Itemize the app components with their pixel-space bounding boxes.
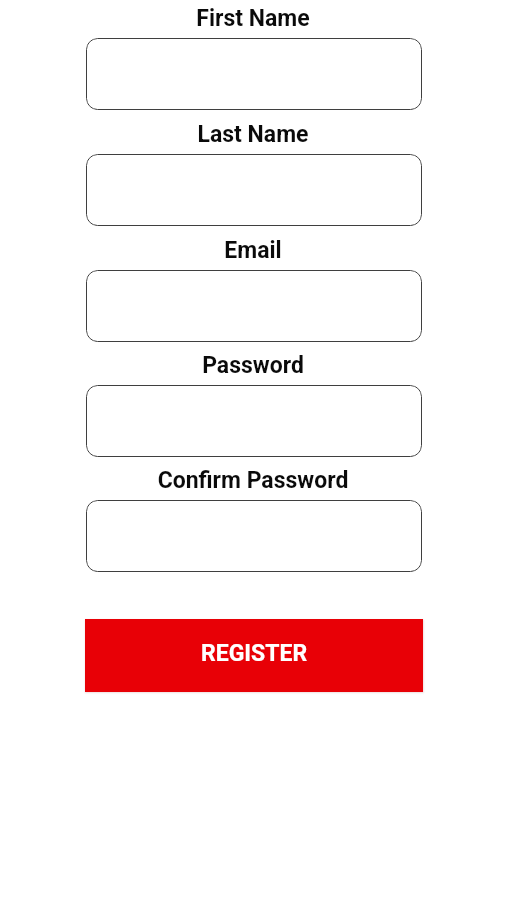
button[interactable]: REGISTER (85, 619, 423, 692)
staticText: REGISTER (201, 640, 308, 667)
staticText: Password (0, 352, 506, 379)
button[interactable]: Last Name (86, 154, 422, 226)
staticText: Last Name (0, 121, 506, 148)
staticText: First Name (0, 5, 506, 32)
staticText: Email (0, 237, 506, 264)
button[interactable]: Password (86, 385, 422, 457)
button[interactable]: Confirm Password (86, 500, 422, 572)
button[interactable]: First Name (86, 38, 422, 110)
button[interactable]: Email (86, 270, 422, 342)
staticText: Confirm Password (0, 467, 506, 494)
